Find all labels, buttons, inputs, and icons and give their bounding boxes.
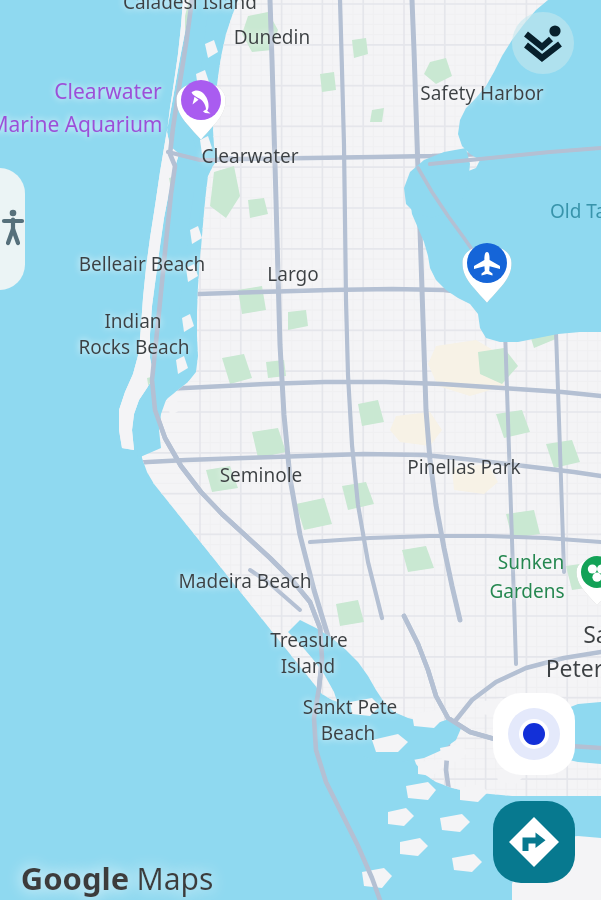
staticText: Clearwater (0, 77, 238, 111)
staticText: Seminole (131, 462, 391, 492)
staticText: Belleair Beach (12, 251, 272, 281)
staticText: Peters (450, 652, 601, 689)
staticText: Sa (466, 618, 601, 655)
staticText: Google (0, 857, 160, 900)
staticText: Madeira Beach (115, 568, 375, 598)
staticText: Largo (163, 261, 423, 291)
staticText: Marine Aquarium (0, 110, 206, 144)
button[interactable]: Directions (493, 801, 575, 883)
staticText: Treasure (179, 627, 439, 657)
staticText: Gardens (397, 578, 601, 608)
staticText: Indian (3, 308, 263, 338)
staticText: Dunedin (142, 24, 402, 54)
button[interactable]: Accessibility (0, 168, 25, 290)
staticText: Maps (115, 858, 235, 900)
staticText: Pinellas Park (334, 454, 594, 484)
staticText: Sunken (401, 549, 601, 579)
staticText: Beach (218, 720, 478, 750)
button[interactable]: My location (493, 693, 575, 775)
staticText: Clearwater (120, 143, 380, 173)
staticText: Sankt Pete (220, 694, 480, 724)
staticText: Rocks Beach (4, 334, 264, 364)
staticText: Safety Harbor (352, 80, 601, 110)
staticText: Old Ta (448, 198, 601, 228)
staticText: Island (178, 653, 438, 683)
button[interactable]: Map layers (512, 12, 574, 74)
staticText: Caladesi Island (60, 0, 320, 19)
